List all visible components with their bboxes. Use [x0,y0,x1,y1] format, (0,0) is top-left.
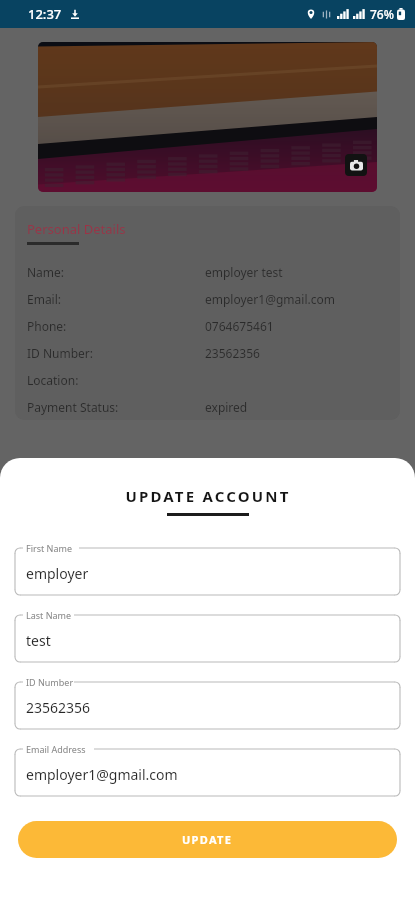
staticText: Location: [27,372,79,388]
staticText: UPDATE [182,832,233,847]
staticText: test [26,631,51,650]
staticText: employer1@gmail.com [26,765,178,784]
staticText: ID Number [26,676,74,688]
staticText: Last Name [26,609,72,621]
button[interactable]: UPDATE [18,821,397,858]
staticText: Personal Details [27,220,126,238]
button[interactable]: Email Address [15,742,400,796]
staticText: Payment Status: [27,399,119,415]
staticText: 0764675461 [205,318,274,334]
staticText: UPDATE ACCOUNT [125,486,291,506]
staticText: 76% [370,6,394,22]
staticText: employer1@gmail.com [205,291,335,307]
staticText: ID Number: [27,345,94,361]
staticText: expired [205,399,248,415]
staticText: 23562356 [26,698,91,717]
button[interactable]: ID Number [15,675,400,729]
staticText: employer test [205,264,283,280]
staticText: Phone: [27,318,67,334]
staticText: employer [26,564,89,583]
staticText: 23562356 [205,345,260,361]
staticText: 12:37 [28,5,62,23]
button[interactable]: Personal Details [15,206,400,420]
staticText: First Name [26,542,72,554]
staticText: Email Address [26,743,86,755]
button[interactable]: First Name [15,541,400,595]
staticText: Email: [27,291,62,307]
button[interactable]: Last Name [15,608,400,662]
staticText: Name: [27,264,65,280]
button[interactable]: Change photo [345,154,367,176]
